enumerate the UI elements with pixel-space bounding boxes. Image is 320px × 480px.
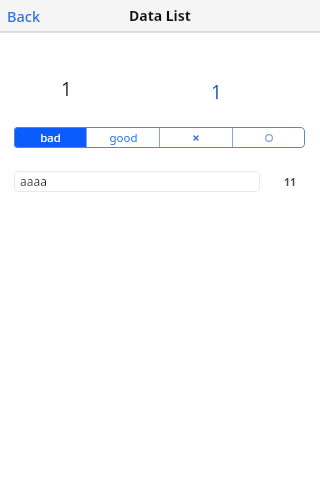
button[interactable]: Cross	[160, 127, 232, 148]
staticText: Data List	[129, 6, 191, 25]
button[interactable]: Circle	[233, 127, 305, 148]
staticText: aaaa	[20, 173, 47, 189]
button[interactable]: bad	[14, 127, 86, 148]
button[interactable]: Back	[0, 0, 51, 31]
staticText: 11	[284, 175, 297, 189]
staticText: good	[109, 130, 138, 146]
staticText: bad	[40, 130, 61, 146]
button[interactable]: good	[87, 127, 159, 148]
staticText: 1	[61, 76, 72, 102]
staticText: Back	[7, 6, 41, 26]
button[interactable]: aaaa	[14, 171, 260, 192]
staticText: 1	[211, 79, 222, 105]
